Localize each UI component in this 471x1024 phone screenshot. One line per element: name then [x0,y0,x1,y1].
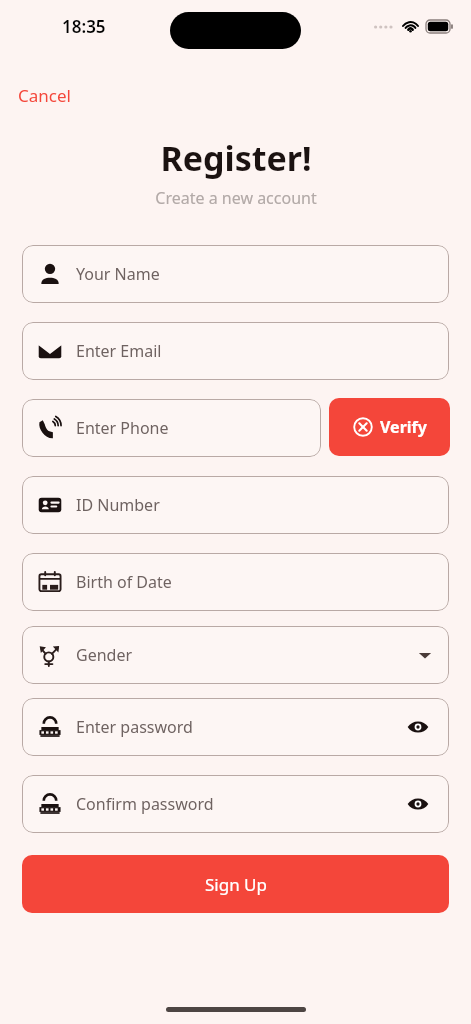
staticText: Sign Up [205,873,267,896]
staticText: Enter password [76,716,193,738]
staticText: Your Name [76,263,160,285]
button[interactable]: Gender [22,626,449,684]
staticText: Cancel [18,84,71,107]
button[interactable]: Verify [329,398,450,456]
staticText: Register! [160,135,312,181]
button[interactable]: ID Number [22,476,449,534]
button[interactable]: Birth of Date [22,553,449,611]
button[interactable]: Confirm password [22,775,449,833]
staticText: Birth of Date [76,571,172,593]
staticText: Enter Phone [76,417,169,439]
staticText: ID Number [76,494,160,516]
button[interactable]: Show password [403,712,433,742]
button[interactable]: Enter Phone [22,399,321,457]
staticText: Create a new account [155,187,317,209]
button[interactable]: Enter password [22,698,449,756]
staticText: Confirm password [76,793,214,815]
staticText: 18:35 [62,15,106,38]
staticText: Gender [76,644,133,666]
button[interactable]: Sign Up [22,855,449,913]
button[interactable]: Cancel [10,80,79,111]
button[interactable]: Show password [403,789,433,819]
button[interactable]: Enter Email [22,322,449,380]
staticText: Enter Email [76,340,162,362]
button[interactable]: Your Name [22,245,449,303]
staticText: Verify [380,416,427,438]
